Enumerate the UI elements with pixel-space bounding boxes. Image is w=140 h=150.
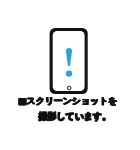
staticText: ■スクリーンショットを	[0, 95, 137, 150]
staticText: ■スクリーンショットを	[0, 95, 138, 150]
staticText: ■スクリーンショットを	[0, 95, 137, 150]
staticText: ■スクリーンショットを	[0, 95, 138, 150]
staticText: 撮影しています。	[5, 110, 140, 150]
staticText: 撮影しています。	[4, 110, 140, 150]
staticText: 撮影しています。	[5, 110, 140, 150]
staticText: 撮影しています。	[5, 111, 140, 150]
staticText: 撮影しています。	[4, 111, 140, 150]
staticText: ■スクリーンショットを	[0, 95, 138, 150]
staticText: 撮影しています。	[5, 111, 140, 150]
staticText: ■スクリーンショットを	[0, 95, 138, 150]
